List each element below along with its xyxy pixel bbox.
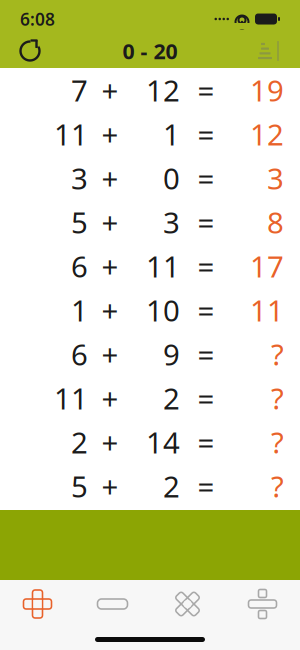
staticText: + bbox=[101, 334, 118, 373]
staticText: 1 bbox=[71, 290, 88, 329]
staticText: 0 bbox=[163, 158, 180, 197]
staticText: = bbox=[197, 202, 214, 241]
button[interactable]: Refresh bbox=[8, 34, 52, 68]
staticText: + bbox=[101, 114, 118, 153]
staticText: 19 bbox=[250, 70, 284, 109]
staticText: = bbox=[197, 378, 214, 417]
staticText: + bbox=[101, 246, 118, 285]
staticText: ? bbox=[271, 422, 284, 461]
staticText: ? bbox=[271, 378, 284, 417]
button[interactable]: Division bbox=[225, 582, 300, 626]
staticText: = bbox=[197, 70, 214, 109]
staticText: + bbox=[101, 466, 118, 505]
button[interactable]: Subtraction bbox=[75, 582, 150, 626]
staticText: 12 bbox=[146, 70, 180, 109]
staticText: = bbox=[197, 246, 214, 285]
staticText: ? bbox=[271, 466, 284, 505]
staticText: 6 bbox=[71, 246, 88, 285]
staticText: 10 bbox=[146, 290, 180, 329]
staticText: 3 bbox=[163, 202, 180, 241]
staticText: + bbox=[101, 422, 118, 461]
staticText: = bbox=[197, 422, 214, 461]
staticText: 11 bbox=[146, 246, 180, 285]
staticText: 17 bbox=[250, 246, 284, 285]
staticText: 7 bbox=[71, 70, 88, 109]
staticText: + bbox=[101, 290, 118, 329]
staticText: = bbox=[197, 334, 214, 373]
staticText: 6:08 bbox=[20, 7, 55, 30]
staticText: = bbox=[197, 466, 214, 505]
staticText: = bbox=[197, 158, 214, 197]
staticText: 8 bbox=[267, 202, 284, 241]
staticText: 2 bbox=[163, 378, 180, 417]
staticText: + bbox=[101, 158, 118, 197]
staticText: 9 bbox=[163, 334, 180, 373]
staticText: 2 bbox=[163, 466, 180, 505]
staticText: + bbox=[101, 378, 118, 417]
staticText: 3 bbox=[267, 158, 284, 197]
staticText: 11 bbox=[54, 114, 88, 153]
staticText: + bbox=[101, 70, 118, 109]
staticText: 1 bbox=[163, 114, 180, 153]
staticText: 3 bbox=[71, 158, 88, 197]
staticText: 0 - 20 bbox=[122, 37, 177, 65]
button[interactable]: Addition bbox=[0, 582, 75, 626]
staticText: 11 bbox=[54, 378, 88, 417]
staticText: ? bbox=[271, 334, 284, 373]
staticText: 5 bbox=[71, 466, 88, 505]
staticText: 6 bbox=[71, 334, 88, 373]
button[interactable]: Multiplication bbox=[150, 582, 225, 626]
staticText: 5 bbox=[71, 202, 88, 241]
staticText: 2 bbox=[71, 422, 88, 461]
staticText: = bbox=[197, 114, 214, 153]
staticText: + bbox=[101, 202, 118, 241]
staticText: 14 bbox=[146, 422, 180, 461]
staticText: 12 bbox=[250, 114, 284, 153]
button[interactable]: Statistics bbox=[248, 34, 292, 68]
staticText: 11 bbox=[250, 290, 284, 329]
staticText: = bbox=[197, 290, 214, 329]
